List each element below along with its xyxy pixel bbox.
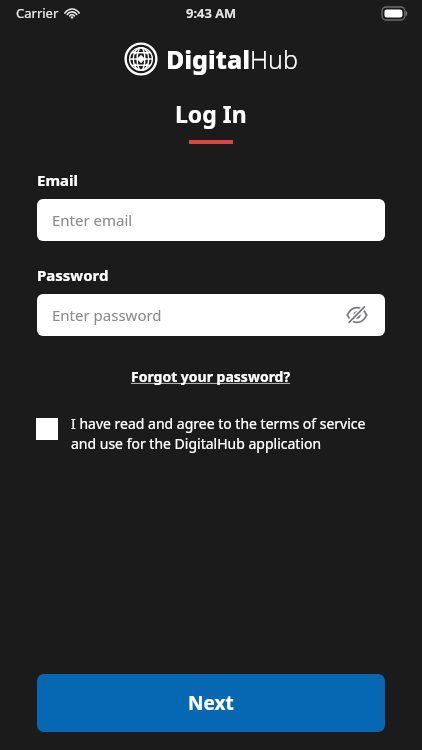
button[interactable]: Show password: [344, 302, 370, 328]
staticText: Password: [37, 265, 109, 285]
staticText: Log In: [175, 98, 247, 129]
staticText: Forgot your password?: [131, 367, 291, 386]
staticText: Digital: [166, 42, 250, 76]
staticText: Next: [188, 690, 234, 716]
staticText: Enter email: [52, 210, 133, 230]
staticText: I have read and agree to the terms of se…: [71, 414, 392, 454]
staticText: Hub: [250, 42, 298, 76]
staticText: Enter password: [52, 305, 162, 325]
button[interactable]: Agree to terms of service: [0, 412, 422, 456]
staticText: Email: [37, 170, 78, 190]
button[interactable]: Forgot your password?: [125, 363, 297, 390]
button[interactable]: Enter email: [37, 199, 385, 241]
button[interactable]: Next: [37, 674, 385, 732]
staticText: 9:43 AM: [186, 4, 237, 22]
button[interactable]: Enter password: [37, 294, 385, 336]
staticText: Carrier: [16, 4, 59, 22]
